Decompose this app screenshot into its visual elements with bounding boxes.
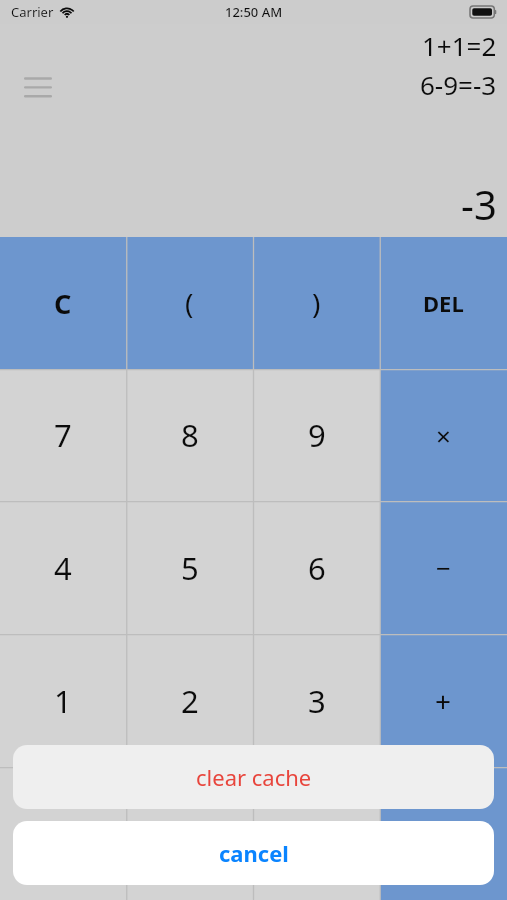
- staticText: 3: [308, 680, 326, 722]
- button[interactable]: (: [126, 237, 253, 369]
- button[interactable]: =: [380, 767, 507, 900]
- button[interactable]: Menu: [12, 64, 64, 108]
- staticText: -3: [461, 177, 497, 231]
- staticText: 8: [181, 414, 199, 456]
- staticText: %: [305, 815, 329, 853]
- button[interactable]: +: [380, 634, 507, 767]
- staticText: 6-9=-3: [420, 67, 497, 102]
- button[interactable]: clear cache: [13, 745, 494, 809]
- button[interactable]: −: [380, 501, 507, 634]
- staticText: 1: [54, 680, 72, 722]
- staticText: 6: [308, 547, 326, 589]
- button[interactable]: 0: [0, 767, 126, 900]
- staticText: C: [54, 285, 72, 322]
- button[interactable]: %: [253, 767, 380, 900]
- staticText: (: [185, 284, 194, 322]
- button[interactable]: 4: [0, 501, 126, 634]
- staticText: cancel: [219, 838, 289, 868]
- staticText: 12:50 AM: [225, 3, 283, 21]
- staticText: Carrier: [11, 3, 54, 21]
- staticText: =: [435, 815, 452, 853]
- staticText: 5: [181, 547, 199, 589]
- staticText: 0: [54, 813, 72, 855]
- button[interactable]: .: [126, 767, 253, 900]
- staticText: +: [435, 682, 452, 720]
- button[interactable]: 3: [253, 634, 380, 767]
- button[interactable]: 8: [126, 369, 253, 501]
- staticText: −: [436, 550, 451, 585]
- button[interactable]: 7: [0, 369, 126, 501]
- staticText: 2: [181, 680, 199, 722]
- button[interactable]: C: [0, 237, 126, 369]
- staticText: .: [185, 813, 194, 855]
- staticText: ×: [436, 418, 451, 453]
- staticText: 7: [54, 414, 72, 456]
- staticText: DEL: [423, 288, 464, 318]
- button[interactable]: 5: [126, 501, 253, 634]
- staticText: 1+1=2: [422, 28, 497, 63]
- staticText: ): [312, 284, 321, 322]
- button[interactable]: 6: [253, 501, 380, 634]
- button[interactable]: ×: [380, 369, 507, 501]
- staticText: 4: [54, 547, 72, 589]
- staticText: 9: [308, 414, 326, 456]
- button[interactable]: DEL: [380, 237, 507, 369]
- button[interactable]: cancel: [13, 821, 494, 885]
- button[interactable]: 9: [253, 369, 380, 501]
- button[interactable]: 2: [126, 634, 253, 767]
- staticText: clear cache: [196, 762, 312, 792]
- button[interactable]: 1: [0, 634, 126, 767]
- button[interactable]: ): [253, 237, 380, 369]
